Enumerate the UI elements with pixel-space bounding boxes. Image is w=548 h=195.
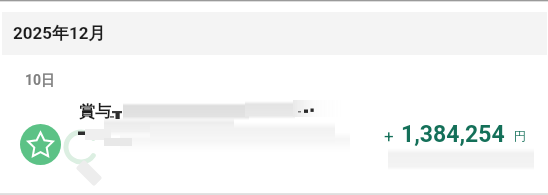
staticText: 1,384,254 <box>401 121 505 148</box>
button[interactable]: 2025年12月 <box>2 12 547 55</box>
other: Category icon <box>20 124 61 165</box>
staticText: 10日 <box>25 72 56 90</box>
staticText: 円 <box>514 128 526 143</box>
staticText: + <box>384 126 394 146</box>
button[interactable]: Category icon <box>0 93 548 193</box>
staticText: 賞与 <box>79 102 111 122</box>
staticText: 2025年12月 <box>13 23 106 44</box>
